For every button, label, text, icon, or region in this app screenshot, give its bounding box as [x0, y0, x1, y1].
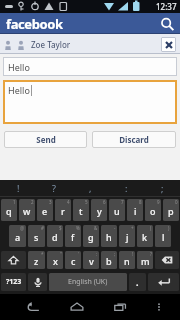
staticText: j	[126, 231, 129, 243]
button[interactable]: 3	[37, 199, 53, 221]
button[interactable]: -	[101, 225, 117, 247]
staticText: (	[150, 225, 152, 231]
button[interactable]: Search	[154, 13, 180, 34]
button[interactable]: (	[137, 225, 153, 247]
button[interactable]: 6	[91, 199, 107, 221]
staticText: +	[131, 225, 134, 231]
button[interactable]: ,	[72, 180, 108, 196]
staticText: y	[97, 205, 102, 217]
staticText: ?	[52, 182, 56, 194]
staticText: 7	[121, 199, 124, 205]
button[interactable]: $	[47, 225, 63, 247]
staticText: .	[136, 276, 139, 288]
staticText: 2	[31, 199, 34, 205]
staticText: :	[96, 251, 98, 257]
button[interactable]: English (UK)	[49, 273, 127, 291]
staticText: 3	[49, 199, 52, 205]
button[interactable]: Hello	[3, 57, 177, 76]
button[interactable]: More options	[144, 294, 173, 320]
staticText: ?	[150, 251, 152, 257]
staticText: facebook	[6, 15, 63, 33]
staticText: c	[71, 255, 76, 267]
staticText: Discard	[119, 134, 149, 145]
staticText: h	[106, 231, 112, 243]
staticText: @	[20, 225, 25, 231]
button[interactable]: 5	[73, 199, 89, 221]
button[interactable]: ?	[137, 251, 153, 269]
staticText: ?123	[6, 277, 22, 287]
button[interactable]: @	[9, 225, 26, 247]
staticText: %	[76, 225, 80, 231]
button[interactable]: !	[119, 251, 135, 269]
button[interactable]: &	[83, 225, 99, 247]
button[interactable]: 7	[109, 199, 125, 221]
button[interactable]: 0	[163, 199, 179, 221]
button[interactable]: Voice input	[28, 273, 47, 291]
button[interactable]: :	[83, 251, 99, 269]
staticText: x	[53, 255, 58, 267]
staticText: k	[142, 231, 148, 243]
staticText: w	[23, 205, 31, 217]
button[interactable]: '	[65, 251, 81, 269]
button[interactable]: 9	[145, 199, 161, 221]
button[interactable]: !	[0, 180, 36, 196]
button[interactable]: "	[47, 251, 63, 269]
button[interactable]: 2	[19, 199, 35, 221]
staticText: o	[150, 205, 156, 217]
staticText: Zoe Taylor	[31, 39, 71, 50]
button[interactable]: #	[28, 225, 45, 247]
button[interactable]: ?	[36, 180, 72, 196]
staticText: ;	[114, 251, 116, 257]
staticText: 12:37	[156, 1, 177, 12]
staticText: 6	[103, 199, 106, 205]
staticText: z	[34, 255, 39, 267]
button[interactable]: Back	[18, 294, 47, 320]
button[interactable]: :	[108, 180, 144, 196]
staticText: *	[41, 251, 44, 257]
button[interactable]: *	[28, 251, 45, 269]
staticText: English (UK)	[68, 277, 108, 287]
button[interactable]: Period	[129, 273, 146, 291]
button[interactable]: ?123	[1, 273, 26, 291]
button[interactable]: Enter	[148, 273, 179, 291]
staticText: 0	[175, 199, 178, 205]
staticText: #	[41, 225, 44, 231]
button[interactable]: Recent apps	[106, 294, 135, 320]
staticText: )	[168, 225, 170, 231]
button[interactable]: %	[65, 225, 81, 247]
button[interactable]: Discard	[92, 131, 176, 148]
staticText: "	[60, 251, 62, 257]
button[interactable]: ;	[144, 180, 180, 196]
staticText: -	[114, 225, 116, 231]
staticText: g	[88, 231, 94, 243]
staticText: 1	[13, 199, 16, 205]
button[interactable]: Shift	[1, 251, 26, 269]
button[interactable]: Remove recipient	[161, 37, 176, 52]
button[interactable]: 4	[55, 199, 71, 221]
staticText: 8	[139, 199, 142, 205]
staticText: d	[52, 231, 58, 243]
staticText: ;	[161, 182, 164, 194]
staticText: q	[6, 205, 12, 217]
button[interactable]: Home	[62, 294, 91, 320]
staticText: u	[114, 205, 120, 217]
staticText: 9	[157, 199, 160, 205]
staticText: e	[42, 205, 48, 217]
button[interactable]: )	[155, 225, 171, 247]
button[interactable]: +	[119, 225, 135, 247]
staticText: l	[162, 231, 165, 243]
staticText: '	[78, 251, 80, 257]
button[interactable]: ;	[101, 251, 117, 269]
button[interactable]: 1	[1, 199, 17, 221]
staticText: :	[125, 182, 128, 194]
button[interactable]: Send	[4, 131, 87, 148]
staticText: &	[94, 225, 98, 231]
staticText: t	[79, 205, 83, 217]
button[interactable]: Backspace	[155, 251, 179, 269]
staticText: !	[17, 182, 20, 194]
staticText: a	[15, 231, 21, 243]
button[interactable]: Hello	[3, 80, 177, 124]
staticText: 4	[67, 199, 70, 205]
button[interactable]: 8	[127, 199, 143, 221]
staticText: ,	[89, 182, 92, 194]
